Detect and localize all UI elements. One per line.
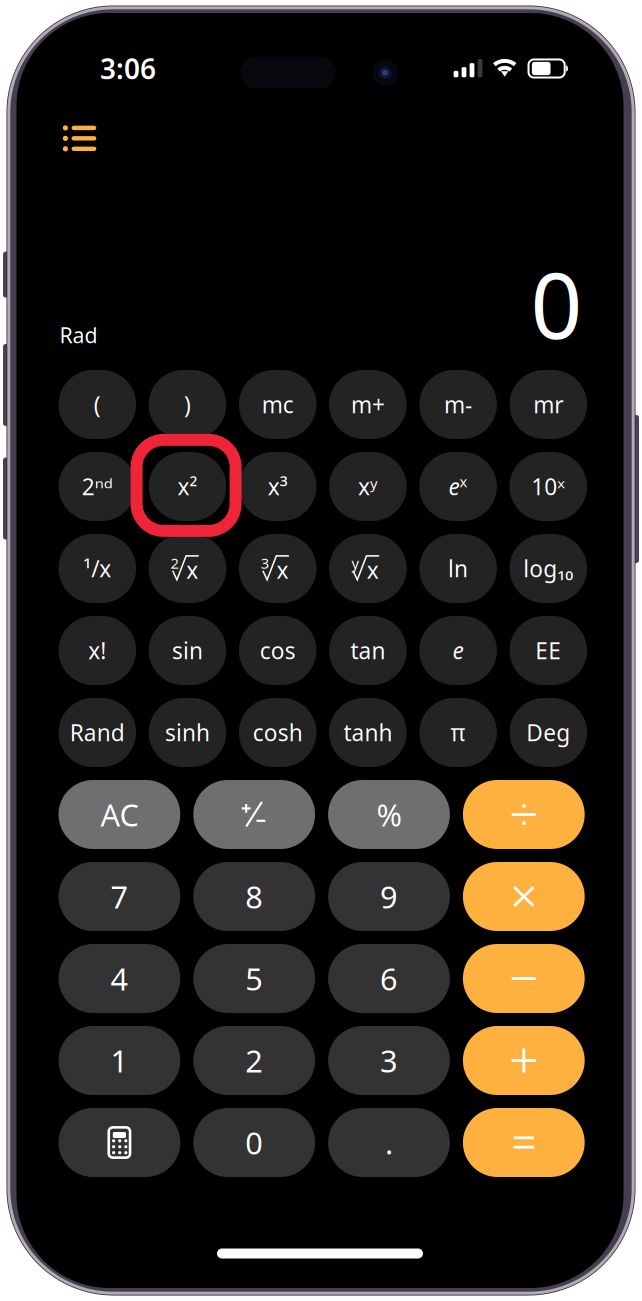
button[interactable]: . (328, 1108, 450, 1177)
staticText: m+ (351, 389, 385, 419)
staticText: 8 (245, 876, 263, 917)
staticText: mr (533, 389, 563, 419)
staticText: 3:06 (100, 50, 156, 87)
button[interactable]: Deg (509, 698, 587, 767)
button[interactable]: 10ˣ (509, 452, 587, 521)
staticText: x! (88, 635, 106, 665)
staticText: x (460, 472, 468, 491)
button[interactable]: 5 (193, 944, 315, 1013)
staticText: ln (448, 553, 468, 583)
button[interactable]: mr (509, 370, 587, 439)
button[interactable]: mc (239, 370, 316, 439)
button[interactable]: x² (149, 452, 226, 521)
button[interactable]: 1 (58, 1026, 180, 1095)
staticText: 0 (245, 1122, 263, 1163)
staticText: log₁₀ (523, 553, 573, 583)
staticText: 2 (170, 553, 178, 573)
staticText: Deg (526, 717, 570, 747)
button[interactable]: ) (149, 370, 226, 439)
button[interactable]: eˣ (419, 452, 497, 521)
button[interactable]: Basic calculator (58, 1108, 180, 1177)
staticText: 10ˣ (531, 471, 565, 501)
button[interactable]: 2ⁿᵈ (58, 452, 136, 521)
button[interactable]: 0 (193, 1108, 315, 1177)
button[interactable]: 4 (58, 944, 180, 1013)
button[interactable]: AC (58, 780, 180, 849)
button[interactable]: ( (58, 370, 136, 439)
staticText: 2ⁿᵈ (82, 471, 113, 501)
button[interactable]: ²√x (149, 534, 226, 603)
button[interactable]: sin (149, 616, 226, 685)
button[interactable]: cosh (239, 698, 316, 767)
button[interactable]: ¹/x (58, 534, 136, 603)
staticText: sinh (165, 717, 210, 747)
button[interactable]: ÷ (463, 780, 585, 849)
staticText: x² (177, 471, 197, 501)
staticText: ¹/x (83, 553, 111, 583)
button[interactable]: m- (419, 370, 497, 439)
button[interactable]: % (328, 780, 450, 849)
button[interactable]: 6 (328, 944, 450, 1013)
staticText: 9 (380, 876, 398, 917)
button[interactable]: − (463, 944, 585, 1013)
staticText: x (186, 555, 198, 585)
button[interactable]: cos (239, 616, 316, 685)
button[interactable]: ³√x (239, 534, 316, 603)
button[interactable]: xʸ (329, 452, 407, 521)
button[interactable]: EE (509, 616, 587, 685)
staticText: cos (260, 635, 296, 665)
button[interactable]: 3 (328, 1026, 450, 1095)
staticText: x³ (268, 471, 288, 501)
button[interactable]: + (463, 1026, 585, 1095)
staticText: 4 (110, 958, 128, 999)
staticText: π (451, 717, 466, 747)
button[interactable]: 8 (193, 862, 315, 931)
button[interactable]: x³ (239, 452, 316, 521)
staticText: 5 (245, 958, 263, 999)
staticText: . (385, 1122, 393, 1163)
staticText: m- (444, 389, 472, 419)
button[interactable]: x! (58, 616, 136, 685)
staticText: e (453, 635, 464, 665)
button[interactable]: log₁₀ (509, 534, 587, 603)
staticText: mc (262, 389, 294, 419)
button[interactable]: tanh (329, 698, 407, 767)
staticText: ) (184, 389, 191, 419)
button[interactable]: = (463, 1108, 585, 1177)
button[interactable]: sinh (149, 698, 226, 767)
staticText: 1 (110, 1040, 128, 1081)
staticText: EE (535, 635, 561, 665)
button[interactable]: 7 (58, 862, 180, 931)
staticText: y (351, 553, 358, 573)
button[interactable]: Rand (58, 698, 136, 767)
button[interactable]: e (419, 616, 497, 685)
button[interactable]: × (463, 862, 585, 931)
staticText: 3 (261, 553, 269, 573)
staticText: AC (100, 794, 138, 835)
staticText: tanh (343, 717, 392, 747)
staticText: sin (172, 635, 203, 665)
button[interactable]: π (419, 698, 497, 767)
button[interactable]: Plus Minus (193, 780, 315, 849)
staticText: xʸ (358, 471, 378, 501)
staticText: 0 (530, 243, 582, 364)
staticText: cosh (253, 717, 303, 747)
button[interactable]: History (49, 114, 109, 166)
staticText: ( (94, 389, 101, 419)
staticText: 7 (110, 876, 128, 917)
staticText: e (449, 471, 460, 501)
button[interactable]: ln (419, 534, 497, 603)
staticText: x (276, 555, 288, 585)
staticText: Rad (59, 321, 97, 349)
staticText: 2 (245, 1040, 263, 1081)
staticText: Rand (70, 717, 125, 747)
staticText: x (367, 555, 379, 585)
staticText: % (376, 794, 401, 835)
staticText: tan (350, 635, 385, 665)
button[interactable]: tan (329, 616, 407, 685)
button[interactable]: m+ (329, 370, 407, 439)
button[interactable]: 2 (193, 1026, 315, 1095)
button[interactable]: ʸ√x (329, 534, 407, 603)
staticText: 6 (380, 958, 398, 999)
button[interactable]: 9 (328, 862, 450, 931)
